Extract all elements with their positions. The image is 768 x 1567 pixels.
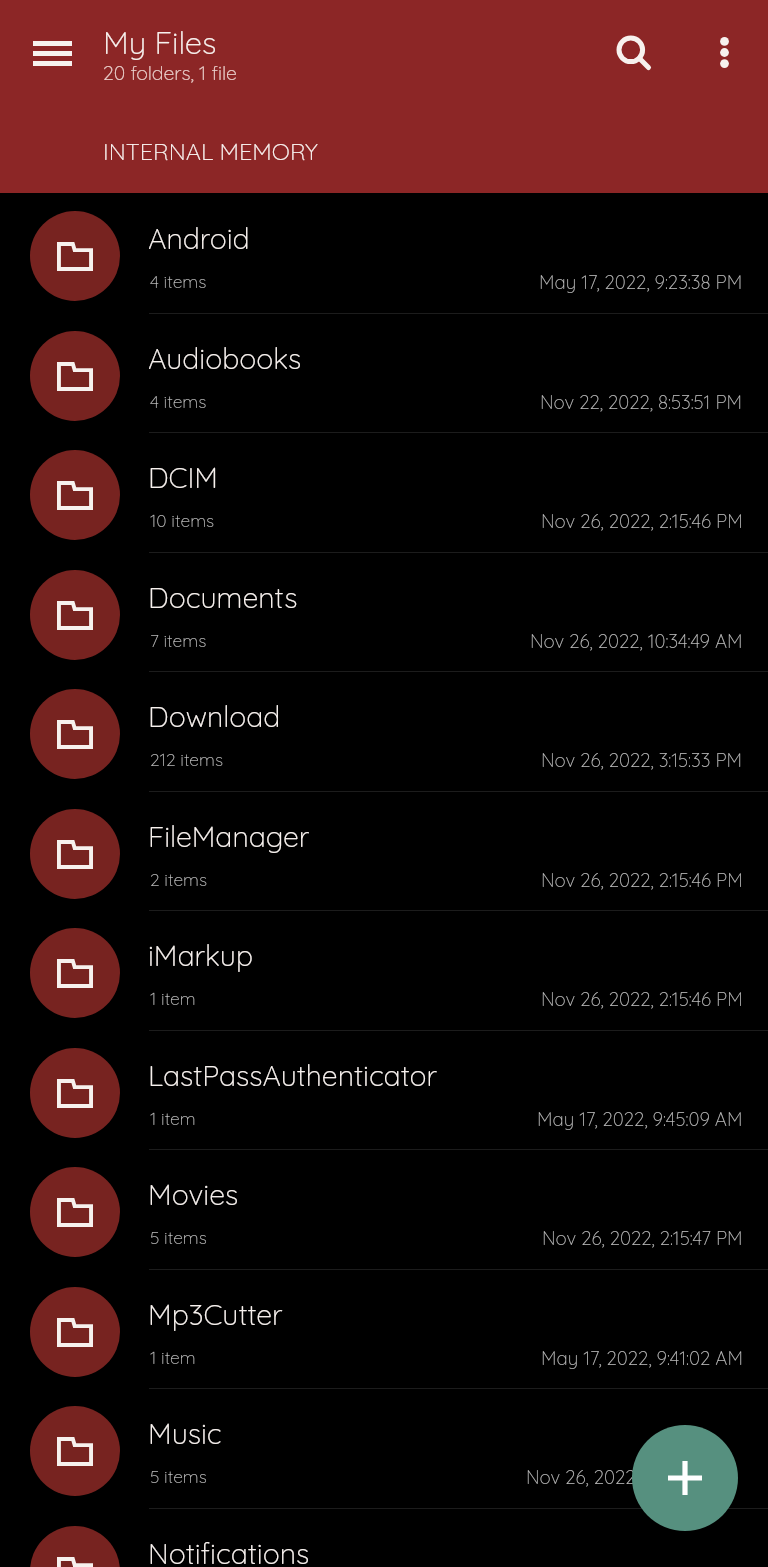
staticText: Documents [148, 579, 298, 615]
staticText: My Files [103, 23, 217, 62]
button[interactable]: Add [632, 1425, 738, 1531]
staticText: 212 items [150, 748, 224, 770]
staticText: FileManager [148, 818, 310, 854]
staticText: Nov 26, 2022, 3:15:33 PM [541, 748, 743, 771]
button[interactable]: iMarkup [0, 911, 768, 1031]
staticText: Android [148, 220, 250, 256]
staticText: 2 items [150, 868, 208, 890]
staticText: INTERNAL MEMORY [103, 136, 318, 165]
button[interactable]: Documents [0, 553, 768, 673]
staticText: 5 items [150, 1226, 207, 1248]
staticText: 20 folders, 1 file [103, 60, 237, 84]
button[interactable]: FileManager [0, 792, 768, 912]
staticText: May 17, 2022, 9:23:38 PM [539, 270, 743, 293]
button[interactable]: Android [0, 194, 768, 314]
staticText: Nov 26, 2022, 2:15:46 PM [541, 509, 743, 532]
staticText: 7 items [150, 629, 207, 651]
button[interactable]: More options [684, 12, 764, 92]
staticText: Nov 26, 2022, 2:15:46 PM [541, 987, 743, 1010]
staticText: Nov 26, 2022, 2:15:46 PM [541, 868, 743, 891]
staticText: 10 items [150, 509, 215, 531]
button[interactable]: Notifications [0, 1509, 768, 1567]
staticText: Mp3Cutter [148, 1296, 283, 1332]
staticText: Nov 26, 2022, 10:34:49 AM [530, 629, 743, 652]
staticText: Nov 26, 2022, 2:15:48 PM [526, 1465, 743, 1488]
staticText: May 17, 2022, 9:41:02 AM [541, 1346, 743, 1369]
staticText: 5 items [150, 1465, 207, 1487]
staticText: iMarkup [148, 937, 253, 973]
staticText: May 17, 2022, 9:45:09 AM [537, 1107, 743, 1130]
staticText: 1 item [150, 987, 196, 1009]
staticText: Music [148, 1415, 222, 1451]
button[interactable]: Download [0, 672, 768, 792]
button[interactable]: DCIM [0, 433, 768, 553]
staticText: Audiobooks [148, 340, 302, 376]
staticText: 1 item [150, 1346, 196, 1368]
staticText: Notifications [148, 1535, 310, 1567]
staticText: 4 items [150, 270, 207, 292]
staticText: 4 items [150, 390, 207, 412]
staticText: DCIM [148, 459, 218, 495]
staticText: LastPassAuthenticator [148, 1057, 438, 1093]
staticText: 1 item [150, 1107, 196, 1129]
button[interactable]: Search [594, 13, 674, 93]
button[interactable]: Movies [0, 1150, 768, 1270]
staticText: Nov 26, 2022, 2:15:47 PM [542, 1226, 743, 1249]
staticText: Movies [148, 1176, 239, 1212]
button[interactable]: Audiobooks [0, 314, 768, 434]
staticText: Download [148, 698, 281, 734]
button[interactable]: Music [0, 1389, 768, 1509]
button[interactable]: Menu [14, 15, 90, 91]
button[interactable]: LastPassAuthenticator [0, 1031, 768, 1151]
button[interactable]: Mp3Cutter [0, 1270, 768, 1390]
staticText: Nov 22, 2022, 8:53:51 PM [540, 390, 743, 413]
